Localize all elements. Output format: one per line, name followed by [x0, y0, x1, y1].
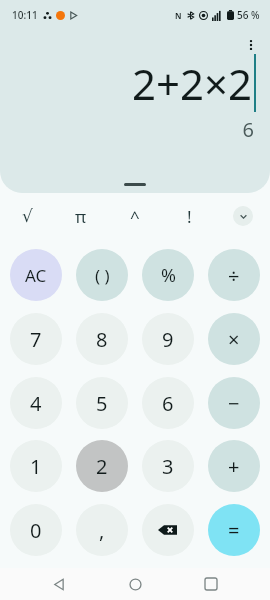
button[interactable]: 4 — [10, 377, 62, 429]
button[interactable]: , — [76, 504, 128, 556]
button[interactable]: ! — [162, 199, 216, 233]
button[interactable]: 7 — [10, 313, 62, 365]
button[interactable]: 6 — [142, 377, 194, 429]
button[interactable]: 2 — [76, 440, 128, 492]
staticText: 10:11 — [12, 8, 38, 22]
button[interactable]: 1 — [10, 440, 62, 492]
staticText: = — [228, 517, 240, 544]
button[interactable]: = — [208, 504, 260, 556]
button[interactable]: ÷ — [208, 249, 260, 301]
button[interactable]: √ — [0, 199, 54, 233]
button[interactable]: % — [142, 249, 194, 301]
button[interactable]: Collapse display — [124, 183, 146, 186]
staticText: 2 — [96, 453, 108, 480]
staticText: ^ — [130, 205, 140, 228]
button[interactable]: + — [208, 440, 260, 492]
button[interactable]: ^ — [108, 199, 162, 233]
staticText: 7 — [30, 326, 42, 353]
button[interactable]: Home — [118, 568, 152, 600]
staticText: AC — [25, 264, 47, 287]
button[interactable]: × — [208, 313, 260, 365]
staticText: ! — [187, 205, 192, 228]
staticText: 1 — [30, 453, 42, 480]
button[interactable]: 9 — [142, 313, 194, 365]
staticText: % — [161, 263, 176, 288]
button[interactable]: More functions — [233, 206, 253, 226]
button[interactable]: ( ) — [76, 249, 128, 301]
button[interactable]: 0 — [10, 504, 62, 556]
staticText: 6 — [242, 116, 254, 143]
button[interactable]: 8 — [76, 313, 128, 365]
button[interactable]: π — [54, 199, 108, 233]
staticText: 5 — [96, 390, 108, 417]
staticText: , — [99, 517, 105, 544]
staticText: × — [228, 326, 240, 353]
staticText: 56 % — [237, 8, 260, 22]
staticText: N — [175, 10, 182, 21]
button[interactable]: Backspace — [142, 504, 194, 556]
staticText: 6 — [162, 390, 174, 417]
button[interactable]: 5 — [76, 377, 128, 429]
staticText: 0 — [30, 517, 42, 544]
staticText: 8 — [96, 326, 108, 353]
staticText: 3 — [162, 453, 174, 480]
button[interactable]: Back — [42, 568, 76, 600]
button[interactable]: Recent apps — [194, 568, 228, 600]
button[interactable]: AC — [10, 249, 62, 301]
button[interactable]: 3 — [142, 440, 194, 492]
staticText: 2+2×2 — [131, 55, 252, 112]
staticText: ÷ — [228, 262, 240, 289]
staticText: − — [228, 390, 240, 417]
staticText: √ — [22, 206, 33, 226]
staticText: π — [75, 205, 87, 228]
button[interactable]: − — [208, 377, 260, 429]
button[interactable]: More options — [240, 34, 262, 56]
staticText: ( ) — [95, 264, 110, 287]
staticText: 4 — [30, 390, 42, 417]
staticText: + — [228, 453, 240, 480]
staticText: 9 — [162, 326, 174, 353]
